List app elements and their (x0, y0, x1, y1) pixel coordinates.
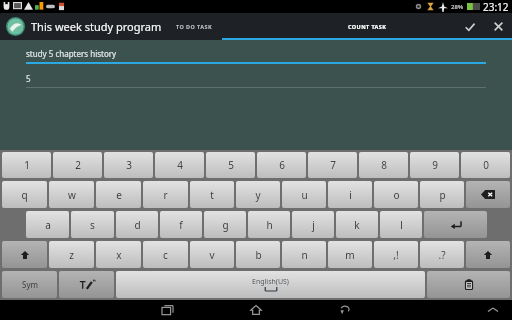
button[interactable]: k (336, 211, 378, 238)
staticText: COUNT TASK (348, 23, 387, 30)
staticText: c (163, 248, 168, 262)
staticText: TO DO TASK (176, 23, 212, 30)
button[interactable]: Close (484, 13, 512, 40)
button[interactable]: English(US) (116, 271, 425, 298)
staticText: 7 (330, 158, 336, 172)
button[interactable]: 7 (308, 152, 357, 178)
staticText: y (255, 188, 261, 202)
staticText: t (210, 188, 214, 202)
staticText: v (209, 248, 215, 262)
button[interactable]: 5 (26, 73, 486, 88)
staticText: a (45, 218, 51, 232)
button[interactable]: 2 (53, 152, 102, 178)
staticText: w (68, 188, 76, 202)
button[interactable]: v (190, 241, 234, 268)
staticText: j (312, 218, 315, 232)
button[interactable]: a (26, 211, 69, 238)
staticText: ,! (393, 248, 399, 262)
staticText: 1 (24, 158, 30, 172)
button[interactable]: t (190, 181, 234, 208)
button[interactable]: study 5 chapters history (26, 48, 486, 64)
button[interactable]: Enter (424, 211, 487, 238)
staticText: e (116, 188, 122, 202)
staticText: 23:12 (483, 0, 509, 13)
button[interactable]: u (282, 181, 326, 208)
button[interactable]: x (96, 241, 141, 268)
button[interactable]: 6 (257, 152, 306, 178)
button[interactable]: p (420, 181, 464, 208)
button[interactable]: n (282, 241, 326, 268)
button[interactable]: 5 (206, 152, 255, 178)
button[interactable]: Done (456, 13, 484, 40)
button[interactable]: g (204, 211, 246, 238)
staticText: 2 (75, 158, 81, 172)
button[interactable]: COUNT TASK (222, 13, 512, 40)
staticText: o (393, 188, 400, 202)
staticText: 8 (381, 158, 387, 172)
button[interactable]: ,! (374, 241, 418, 268)
button[interactable]: b (236, 241, 280, 268)
button[interactable]: TO DO TASK (176, 13, 212, 40)
button[interactable]: Expand (482, 300, 504, 320)
button[interactable]: o (374, 181, 418, 208)
button[interactable]: Shift (466, 241, 510, 268)
staticText: English(US) (252, 277, 289, 287)
staticText: 6 (279, 158, 285, 172)
staticText: i (349, 188, 352, 202)
button[interactable]: d (116, 211, 158, 238)
staticText: m (345, 248, 355, 262)
button[interactable]: e (96, 181, 141, 208)
staticText: This week study program (31, 19, 162, 34)
button[interactable]: 4 (155, 152, 204, 178)
staticText: d (134, 218, 141, 232)
staticText: study 5 chapters history (26, 48, 117, 59)
staticText: n (301, 248, 308, 262)
staticText: g (222, 218, 229, 232)
button[interactable]: r (143, 181, 188, 208)
button[interactable]: Handwriting (59, 271, 114, 298)
button[interactable]: Backspace (466, 181, 510, 208)
button[interactable]: Clipboard (427, 271, 510, 298)
button[interactable]: l (380, 211, 422, 238)
staticText: 28% (451, 3, 464, 11)
button[interactable]: Shift (2, 241, 47, 268)
button[interactable]: h (248, 211, 290, 238)
staticText: b (255, 248, 262, 262)
staticText: 0 (483, 158, 489, 172)
staticText: .? (438, 248, 446, 262)
staticText: 5 (228, 158, 234, 172)
button[interactable]: Home (239, 300, 273, 320)
staticText: p (439, 188, 446, 202)
button[interactable]: j (292, 211, 334, 238)
staticText: u (301, 188, 308, 202)
staticText: r (163, 188, 168, 202)
button[interactable]: Sym (2, 271, 57, 298)
staticText: q (21, 188, 28, 202)
staticText: 9 (432, 158, 438, 172)
staticText: 5 (26, 73, 31, 84)
button[interactable]: 3 (104, 152, 153, 178)
button[interactable]: 8 (359, 152, 408, 178)
staticText: s (90, 218, 95, 232)
button[interactable]: i (328, 181, 372, 208)
button[interactable]: y (236, 181, 280, 208)
staticText: h (266, 218, 273, 232)
button[interactable]: z (49, 241, 94, 268)
button[interactable]: w (49, 181, 94, 208)
staticText: k (354, 218, 360, 232)
button[interactable]: Back (328, 300, 362, 320)
button[interactable]: c (143, 241, 188, 268)
button[interactable]: .? (420, 241, 464, 268)
staticText: Sym (22, 279, 38, 290)
button[interactable]: 9 (410, 152, 459, 178)
button[interactable]: q (2, 181, 47, 208)
button[interactable]: 1 (2, 152, 51, 178)
button[interactable]: m (328, 241, 372, 268)
button[interactable]: s (71, 211, 114, 238)
button[interactable]: 0 (461, 152, 510, 178)
staticText: x (116, 248, 122, 262)
button[interactable]: Recents (150, 300, 184, 320)
staticText: z (69, 248, 74, 262)
staticText: l (400, 218, 403, 232)
button[interactable]: f (160, 211, 202, 238)
